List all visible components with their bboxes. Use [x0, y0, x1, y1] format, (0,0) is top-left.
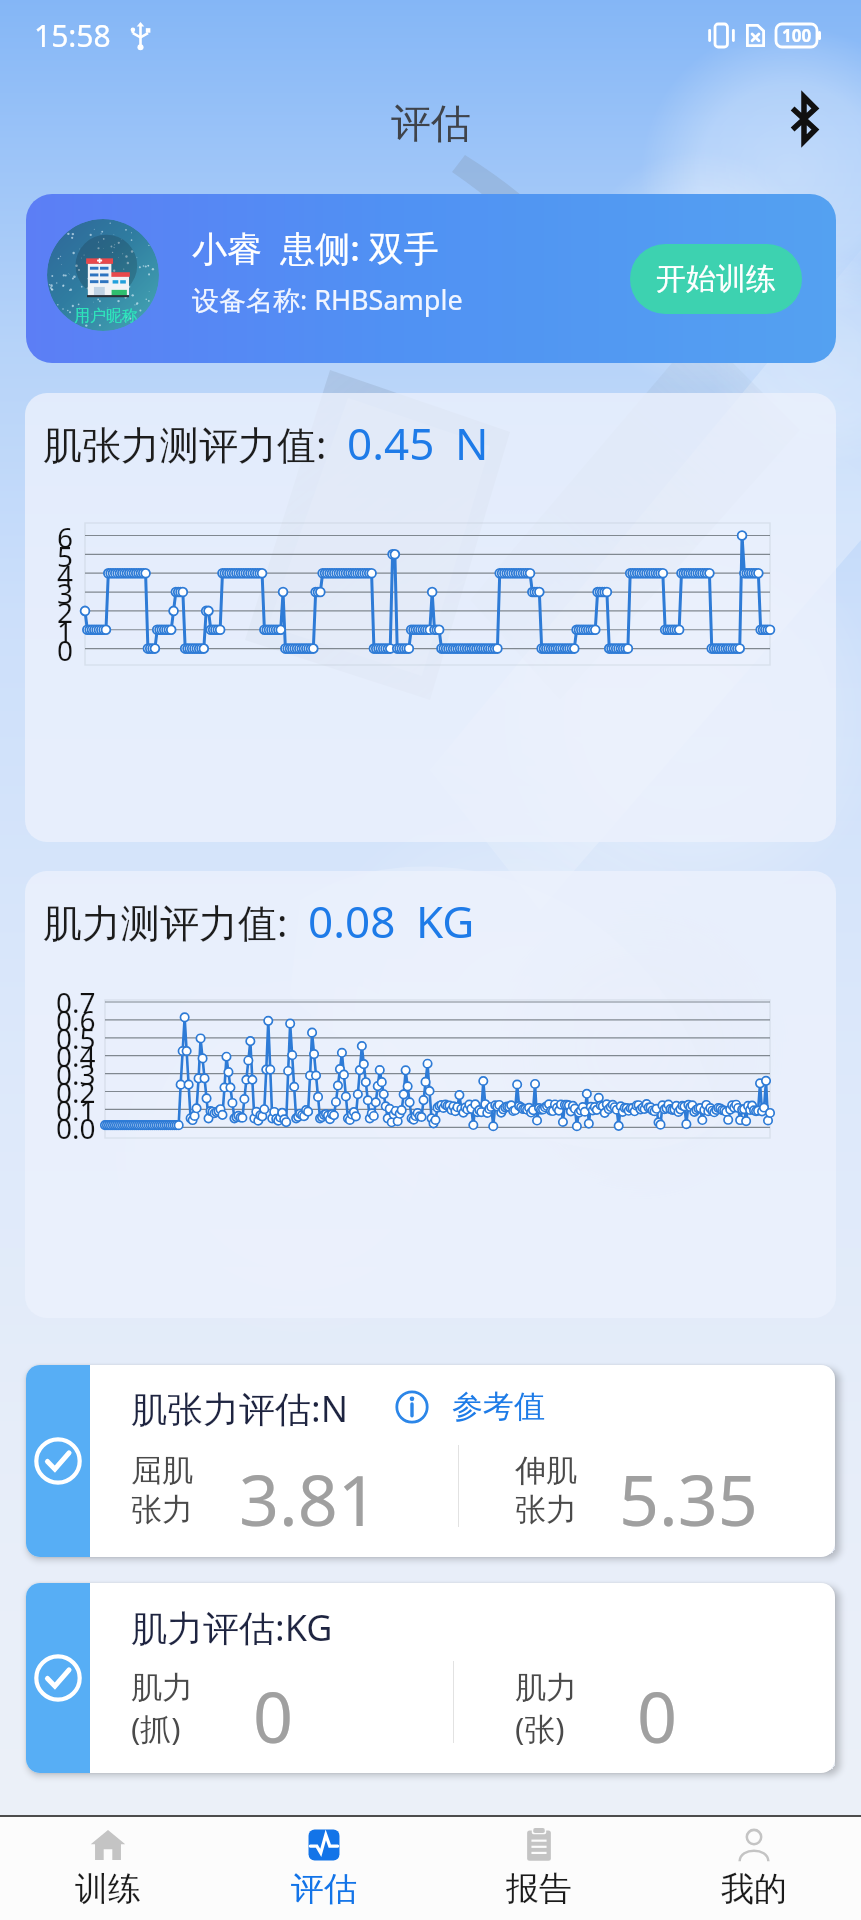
staticText: 0.6 [56, 1001, 96, 1039]
button[interactable]: 训练 [0, 1817, 216, 1920]
staticText: 15:58 [34, 15, 111, 56]
staticText: 1 [57, 612, 74, 650]
staticText: 0.08 [308, 891, 396, 951]
staticText: 用户昵称 [74, 306, 138, 326]
button[interactable]: 开始训练 [630, 244, 802, 314]
button[interactable]: 我的 [646, 1817, 861, 1920]
staticText: 0.2 [56, 1073, 96, 1111]
button[interactable]: 肌张力评估:N [26, 1365, 835, 1557]
staticText: 2 [57, 593, 74, 631]
staticText: 肌力评估:KG [131, 1603, 333, 1652]
staticText: 伸肌 [515, 1451, 577, 1490]
button[interactable]: 用户昵称 [26, 194, 836, 363]
staticText: 小睿 患侧: 双手 [192, 224, 439, 272]
staticText: 0.45 [347, 413, 435, 473]
staticText: 0.1 [56, 1091, 96, 1129]
staticText: 0.5 [56, 1019, 96, 1057]
button[interactable]: 评估 [216, 1817, 431, 1920]
staticText: 100 [782, 24, 812, 47]
staticText: 3.81 [239, 1451, 378, 1546]
staticText: 开始训练 [656, 260, 776, 298]
button[interactable]: Bluetooth [777, 92, 831, 146]
staticText: 张力 [131, 1490, 193, 1529]
staticText: KG [416, 891, 475, 951]
staticText: 张力 [515, 1490, 577, 1529]
staticText: (张) [515, 1707, 565, 1749]
staticText: 训练 [75, 1868, 141, 1910]
button[interactable]: Info [393, 1388, 431, 1426]
button[interactable]: 肌力评估:KG [26, 1583, 835, 1773]
staticText: 0.3 [56, 1055, 96, 1093]
staticText: 肌力测评力值: [43, 895, 288, 948]
button[interactable]: 报告 [431, 1817, 646, 1920]
staticText: 6 [57, 518, 74, 556]
staticText: 0.7 [56, 983, 96, 1021]
staticText: 肌力 [515, 1668, 577, 1707]
staticText: 我的 [721, 1868, 787, 1910]
staticText: 0.4 [56, 1037, 96, 1075]
staticText: 肌力 [131, 1668, 193, 1707]
staticText: 4 [57, 556, 74, 594]
staticText: 评估 [291, 1868, 357, 1910]
staticText: N [455, 413, 489, 473]
staticText: (抓) [131, 1707, 181, 1749]
staticText: 0 [637, 1668, 678, 1763]
staticText: 屈肌 [131, 1451, 193, 1490]
staticText: 肌张力评估:N [131, 1384, 349, 1433]
staticText: 0.0 [56, 1109, 96, 1147]
staticText: 设备名称: RHBSample [192, 281, 463, 318]
staticText: 评估 [391, 98, 471, 148]
staticText: 参考值 [452, 1387, 545, 1426]
staticText: 3 [57, 574, 74, 612]
staticText: 5.35 [619, 1451, 758, 1546]
staticText: 肌张力测评力值: [43, 417, 327, 470]
staticText: 报告 [506, 1868, 572, 1910]
staticText: 0 [57, 631, 74, 669]
staticText: 0 [253, 1668, 294, 1763]
staticText: 5 [57, 537, 74, 575]
